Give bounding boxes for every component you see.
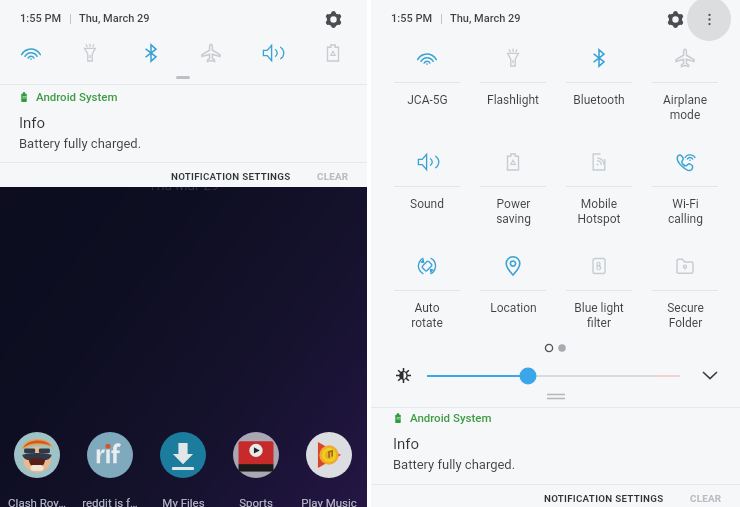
button[interactable] [306, 432, 352, 478]
button[interactable] [233, 432, 279, 478]
staticText: NOTIFICATION SETTINGS [544, 493, 664, 504]
staticText: Thu, March 29 [450, 12, 521, 25]
staticText: Android System [36, 90, 118, 103]
button[interactable]: NOTIFICATION SETTINGS [153, 165, 309, 187]
button[interactable]: More options [687, 0, 731, 41]
button[interactable]: Secure Folder [645, 240, 725, 326]
staticText: Wi-Fi calling [668, 197, 703, 226]
button[interactable]: Settings [319, 5, 347, 33]
staticText: Airplane mode [663, 93, 707, 122]
button[interactable]: Auto rotate [387, 240, 467, 326]
button[interactable]: Sound [251, 32, 293, 74]
button[interactable]: Sound [387, 136, 467, 222]
staticText: 1:55 PM [391, 12, 433, 25]
button[interactable]: Blue light filter [559, 240, 639, 326]
button[interactable] [87, 432, 133, 478]
staticText: Play Music [301, 496, 357, 507]
button[interactable]: Flashlight [473, 32, 553, 118]
button[interactable]: Airplane mode [645, 32, 725, 118]
staticText: Secure Folder [667, 301, 704, 330]
staticText: Clash Roy… [8, 496, 66, 507]
staticText: Battery fully charged. [19, 136, 142, 151]
staticText: Sound [410, 197, 444, 211]
staticText: Thu, March 29 [79, 12, 150, 25]
button[interactable]: Power saving [312, 32, 354, 74]
button[interactable]: Flashlight [69, 32, 111, 74]
button[interactable] [14, 432, 60, 478]
staticText: Mobile Hotspot [577, 197, 621, 226]
button[interactable]: JCA-5G [387, 32, 467, 118]
staticText: Battery fully charged. [393, 457, 516, 472]
staticText: Power saving [496, 197, 531, 226]
staticText: reddit is f… [82, 496, 138, 507]
staticText: Info [19, 114, 46, 132]
staticText: Thu Mar 29 [148, 177, 219, 193]
staticText: CLEAR [690, 493, 722, 504]
staticText: JCA-5G [407, 93, 448, 107]
button[interactable]: NOTIFICATION SETTINGS [526, 487, 682, 507]
staticText: 1:55 PM [20, 12, 62, 25]
button[interactable]: Settings [661, 5, 689, 33]
button[interactable]: Mobile Hotspot [559, 136, 639, 222]
button[interactable]: Brightness [392, 364, 414, 386]
staticText: My Files [162, 496, 205, 507]
staticText: Sports [239, 496, 273, 507]
button[interactable]: Wi-Fi calling [645, 136, 725, 222]
staticText: Auto rotate [411, 301, 443, 330]
staticText: Blue light filter [574, 301, 624, 330]
staticText: Info [393, 435, 420, 453]
staticText: CLEAR [317, 171, 349, 182]
button[interactable] [160, 432, 206, 478]
button[interactable]: Expand [697, 362, 723, 388]
button[interactable]: CLEAR [680, 487, 732, 507]
button[interactable]: CLEAR [307, 165, 359, 187]
button[interactable]: Wi-Fi [10, 32, 52, 74]
button[interactable]: Bluetooth [130, 32, 172, 74]
staticText: NOTIFICATION SETTINGS [171, 171, 291, 182]
staticText: Location [490, 301, 537, 315]
staticText: Flashlight [487, 93, 539, 107]
staticText: Bluetooth [573, 93, 625, 107]
button[interactable]: Power saving [473, 136, 553, 222]
staticText: Android System [410, 411, 492, 424]
button[interactable]: Location [473, 240, 553, 326]
button[interactable]: Airplane mode [190, 32, 232, 74]
button[interactable]: Bluetooth [559, 32, 639, 118]
